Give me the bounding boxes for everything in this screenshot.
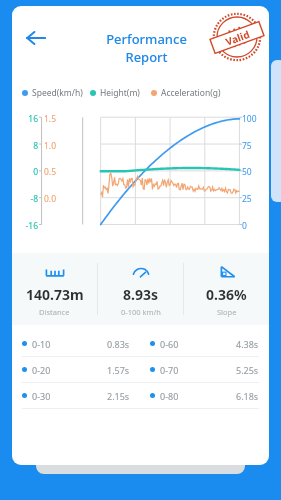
button[interactable]: 0-30 [12, 383, 140, 408]
staticText: Slope [217, 307, 237, 317]
staticText: Distance [39, 307, 70, 317]
staticText: 0-100 km/h [121, 307, 161, 317]
staticText: 0.36% [206, 285, 247, 304]
staticText: 25 [242, 193, 268, 205]
staticText: Speed(km/h) [32, 87, 83, 99]
staticText: 0 [12, 166, 38, 178]
staticText: 0 [242, 220, 268, 232]
staticText: 0-10 [32, 338, 51, 350]
staticText: 0-30 [32, 390, 51, 402]
staticText: 4.38s [236, 338, 259, 350]
staticText: 0-70 [160, 364, 179, 376]
staticText: 8 [12, 140, 38, 152]
staticText: 0.0 [44, 193, 72, 205]
button[interactable]: 140.73m [12, 253, 97, 325]
staticText: 0-20 [32, 364, 51, 376]
staticText: Acceleration(g) [161, 87, 221, 99]
button[interactable]: Back [18, 20, 54, 56]
staticText: 50 [242, 166, 268, 178]
staticText: 2.15s [107, 390, 130, 402]
staticText: 1.0 [44, 140, 72, 152]
staticText: 75 [242, 140, 268, 152]
staticText: 5.25s [236, 364, 259, 376]
staticText: Height(m) [100, 87, 140, 99]
staticText: 0-60 [160, 338, 179, 350]
button[interactable]: 0-60 [140, 331, 269, 356]
staticText: Valid [223, 27, 252, 49]
staticText: 0.5 [44, 166, 72, 178]
staticText: 6.18s [236, 390, 259, 402]
button[interactable]: 0-10 [12, 331, 140, 356]
staticText: -16 [12, 220, 38, 232]
staticText: 1.5 [44, 113, 72, 125]
button[interactable]: 0.36% [184, 253, 269, 325]
staticText: 0-80 [160, 390, 179, 402]
staticText: 1.57s [107, 364, 130, 376]
staticText: 100 [242, 113, 268, 125]
staticText: 8.93s [123, 285, 158, 304]
staticText: 16 [12, 113, 38, 125]
button[interactable]: 0-80 [140, 383, 269, 408]
staticText: 0.83s [107, 338, 130, 350]
button[interactable]: 0-20 [12, 357, 140, 382]
staticText: Performance Report [84, 30, 209, 66]
button[interactable]: 8.93s [98, 253, 183, 325]
button[interactable]: 0-70 [140, 357, 269, 382]
staticText: -8 [12, 193, 38, 205]
staticText: 140.73m [26, 285, 84, 304]
